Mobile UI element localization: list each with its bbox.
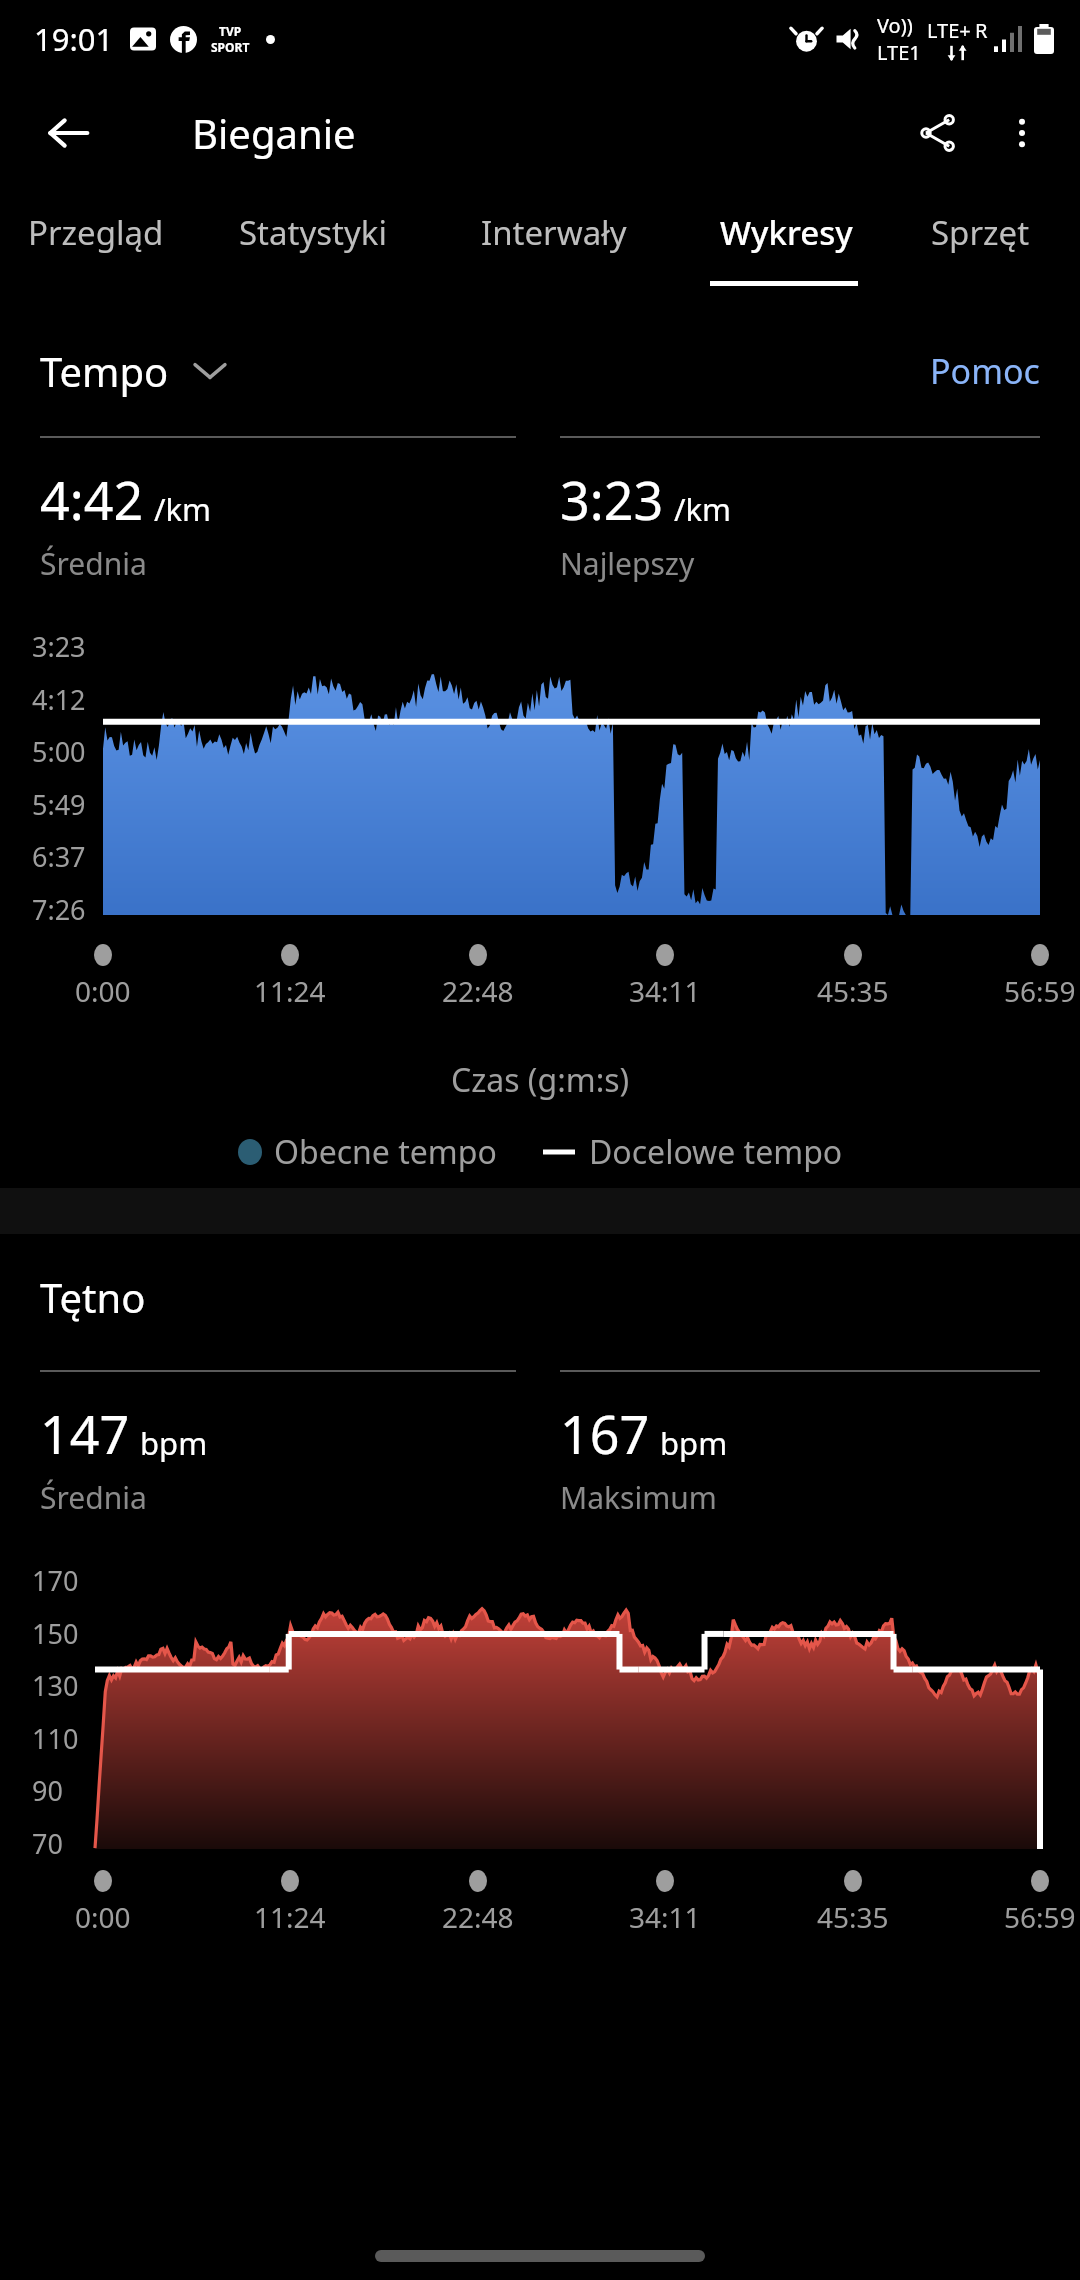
staticText: 6:37	[32, 838, 86, 875]
staticText: 130	[32, 1667, 79, 1704]
staticText: 45:35	[817, 1898, 889, 1936]
staticText: 19:01	[34, 18, 114, 60]
staticText: 22:48	[442, 1898, 514, 1936]
staticText: /km	[674, 488, 732, 530]
staticText: 167	[560, 1398, 650, 1469]
staticText: 34:11	[629, 1898, 701, 1936]
staticText: 56:59	[1004, 972, 1076, 1010]
staticText: Bieganie	[192, 106, 356, 160]
button[interactable]: More options	[980, 91, 1064, 175]
staticText: Najlepszy	[560, 543, 695, 584]
button[interactable]: Przegląd	[28, 188, 164, 308]
button[interactable]: Share	[896, 91, 980, 175]
staticText: 7:26	[32, 891, 86, 928]
staticText: 170	[32, 1562, 79, 1599]
staticText: 11:24	[254, 972, 326, 1010]
staticText: Średnia	[40, 543, 147, 584]
staticText: 150	[32, 1615, 79, 1652]
staticText: Tętno	[40, 1270, 146, 1324]
staticText: 5:00	[32, 733, 86, 770]
button[interactable]: Sprzęt	[931, 188, 1030, 308]
button[interactable]: Statystyki	[239, 188, 387, 308]
staticText: bpm	[660, 1422, 728, 1464]
staticText: Obecne tempo	[274, 1130, 497, 1174]
staticText: 4:12	[32, 681, 86, 718]
staticText: Tempo	[40, 344, 169, 398]
staticText: 4:42	[40, 464, 144, 535]
button[interactable]: Pomoc	[930, 348, 1040, 394]
staticText: R	[975, 17, 988, 44]
staticText: Vo))	[877, 12, 913, 39]
staticText: 45:35	[817, 972, 889, 1010]
staticText: Statystyki	[239, 210, 387, 255]
staticText: SPORT	[211, 39, 250, 55]
staticText: 22:48	[442, 972, 514, 1010]
staticText: TVP	[219, 23, 242, 39]
staticText: 3:23	[560, 464, 664, 535]
staticText: 3:23	[32, 628, 86, 665]
staticText: 0:00	[75, 1898, 131, 1936]
staticText: 0:00	[75, 972, 131, 1010]
staticText: 70	[32, 1825, 63, 1862]
staticText: Średnia	[40, 1477, 147, 1518]
staticText: 34:11	[629, 972, 701, 1010]
staticText: 5:49	[32, 786, 86, 823]
button[interactable]: Tempo	[40, 344, 225, 398]
staticText: Interwały	[481, 210, 627, 255]
staticText: Maksimum	[560, 1477, 717, 1518]
staticText: 11:24	[254, 1898, 326, 1936]
staticText: Przegląd	[28, 210, 164, 255]
staticText: 147	[40, 1398, 130, 1469]
button[interactable]: Wykresy	[720, 188, 853, 308]
staticText: Pomoc	[930, 348, 1040, 394]
staticText: Wykresy	[720, 210, 853, 255]
staticText: Docelowe tempo	[589, 1130, 843, 1174]
staticText: Sprzęt	[931, 210, 1030, 255]
staticText: 110	[32, 1720, 79, 1757]
staticText: LTE1	[877, 39, 921, 66]
staticText: 90	[32, 1772, 63, 1809]
staticText: 56:59	[1004, 1898, 1076, 1936]
button[interactable]: Interwały	[481, 188, 627, 308]
button[interactable]: Back	[26, 91, 110, 175]
staticText: Czas (g:m:s)	[451, 1058, 630, 1102]
staticText: /km	[154, 488, 212, 530]
staticText: bpm	[140, 1422, 208, 1464]
staticText: LTE+	[927, 17, 971, 44]
